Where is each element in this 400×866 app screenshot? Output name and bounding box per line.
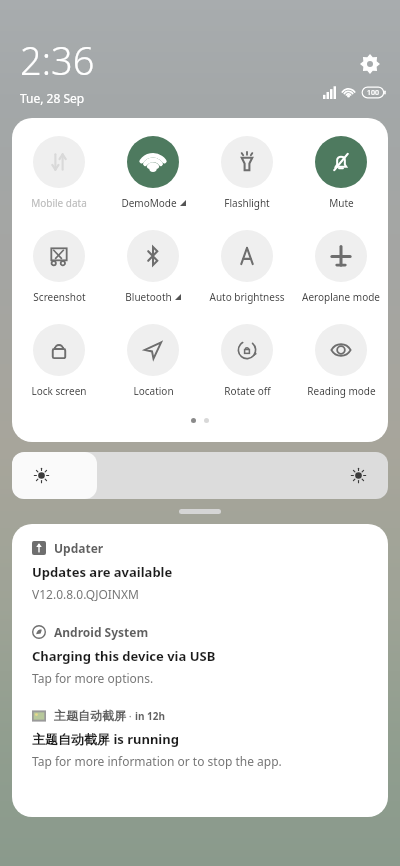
staticText: 100 <box>367 88 380 98</box>
button[interactable]: Aeroplane mode <box>294 224 388 318</box>
button[interactable]: Mute <box>294 130 388 224</box>
button[interactable]: Rotate off <box>200 318 294 412</box>
staticText: Charging this device via USB <box>32 647 216 665</box>
staticText: V12.0.8.0.QJOINXM <box>32 586 139 602</box>
button[interactable]: Brightness <box>12 452 388 499</box>
staticText: DemoMode <box>121 196 177 210</box>
staticText: Tap for more options. <box>32 670 154 686</box>
button[interactable]: Auto brightness <box>200 224 294 318</box>
button[interactable]: Lock screen <box>12 318 106 412</box>
button[interactable]: DemoMode <box>106 130 200 224</box>
button[interactable]: Android System <box>12 608 388 692</box>
staticText: Tue, 28 Sep <box>20 90 85 106</box>
button[interactable]: Updater <box>12 524 388 608</box>
staticText: Updater <box>54 540 104 556</box>
staticText: Lock screen <box>31 384 87 398</box>
staticText: in 12h <box>135 709 166 723</box>
button[interactable]: Screenshot <box>12 224 106 318</box>
staticText: Updates are available <box>32 563 173 581</box>
staticText: 2:36 <box>20 34 95 86</box>
staticText: Rotate off <box>224 384 271 398</box>
staticText: Screenshot <box>33 290 86 304</box>
staticText: · <box>126 708 135 723</box>
staticText: Tap for more information or to stop the … <box>32 753 282 769</box>
staticText: Mute <box>329 196 354 210</box>
staticText: Bluetooth <box>125 290 172 304</box>
button[interactable]: Location <box>106 318 200 412</box>
button[interactable]: Reading mode <box>294 318 388 412</box>
staticText: 主题自动截屏 <box>54 708 126 723</box>
staticText: Aeroplane mode <box>302 290 380 304</box>
staticText: Android System <box>54 624 149 640</box>
staticText: Reading mode <box>307 384 376 398</box>
button[interactable]: Bluetooth <box>106 224 200 318</box>
staticText: 主题自动截屏 is running <box>32 730 179 748</box>
button[interactable]: Flashlight <box>200 130 294 224</box>
staticText: Auto brightness <box>209 290 285 304</box>
staticText: Mobile data <box>31 196 87 210</box>
button[interactable]: Mobile data <box>12 130 106 224</box>
staticText: Location <box>133 384 174 398</box>
staticText: Flashlight <box>224 196 270 210</box>
button[interactable]: Settings <box>356 50 384 78</box>
button[interactable]: 主题自动截屏 <box>12 692 388 775</box>
